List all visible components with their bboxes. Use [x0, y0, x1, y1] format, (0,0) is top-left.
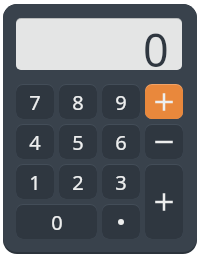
- button[interactable]: Add: [145, 85, 183, 119]
- button[interactable]: 5: [59, 125, 97, 159]
- button[interactable]: 0: [16, 205, 97, 239]
- button[interactable]: 2: [59, 165, 97, 199]
- staticText: 6: [115, 129, 127, 156]
- staticText: 5: [72, 129, 84, 156]
- staticText: 7: [29, 89, 41, 116]
- staticText: 2: [72, 169, 84, 196]
- staticText: 0: [51, 209, 63, 236]
- button[interactable]: Plus: [145, 165, 183, 239]
- staticText: 1: [29, 169, 41, 196]
- button[interactable]: 1: [16, 165, 54, 199]
- staticText: 8: [72, 89, 84, 116]
- staticText: 4: [29, 129, 41, 156]
- button[interactable]: Decimal point: [102, 205, 140, 239]
- button[interactable]: 8: [59, 85, 97, 119]
- button[interactable]: 7: [16, 85, 54, 119]
- button[interactable]: Subtract: [145, 125, 183, 159]
- staticText: 9: [115, 89, 127, 116]
- button[interactable]: 6: [102, 125, 140, 159]
- staticText: 0: [143, 19, 169, 67]
- button[interactable]: 3: [102, 165, 140, 199]
- button[interactable]: 9: [102, 85, 140, 119]
- button[interactable]: 4: [16, 125, 54, 159]
- staticText: 3: [115, 169, 127, 196]
